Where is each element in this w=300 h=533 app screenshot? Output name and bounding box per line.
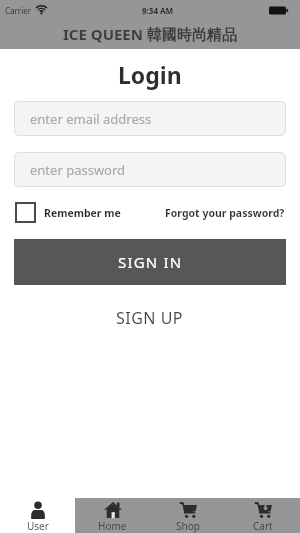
staticText: Home <box>98 519 127 533</box>
staticText: 9:34 AM <box>142 5 174 16</box>
staticText: Cart <box>253 519 273 533</box>
button[interactable]: SIGN UP <box>116 307 184 329</box>
button[interactable]: Cart <box>225 498 300 533</box>
button[interactable]: SIGN IN <box>14 239 286 285</box>
button[interactable]: Remember me <box>15 202 121 223</box>
staticText: SIGN IN <box>118 252 183 272</box>
staticText: Login <box>118 59 182 90</box>
button[interactable]: enter password <box>14 152 286 187</box>
staticText: User <box>27 519 49 533</box>
staticText: Carrier <box>5 5 32 16</box>
staticText: enter password <box>30 161 126 179</box>
button[interactable]: Shop <box>150 498 225 533</box>
staticText: Shop <box>176 519 200 533</box>
button[interactable]: enter email address <box>14 101 286 136</box>
button[interactable]: User <box>0 498 75 533</box>
button[interactable]: Forgot your password? <box>165 206 285 220</box>
staticText: ICE QUEEN 韓國時尚精品 <box>63 24 237 44</box>
staticText: Remember me <box>44 206 121 220</box>
staticText: enter email address <box>30 110 152 128</box>
button[interactable]: Home <box>75 498 150 533</box>
